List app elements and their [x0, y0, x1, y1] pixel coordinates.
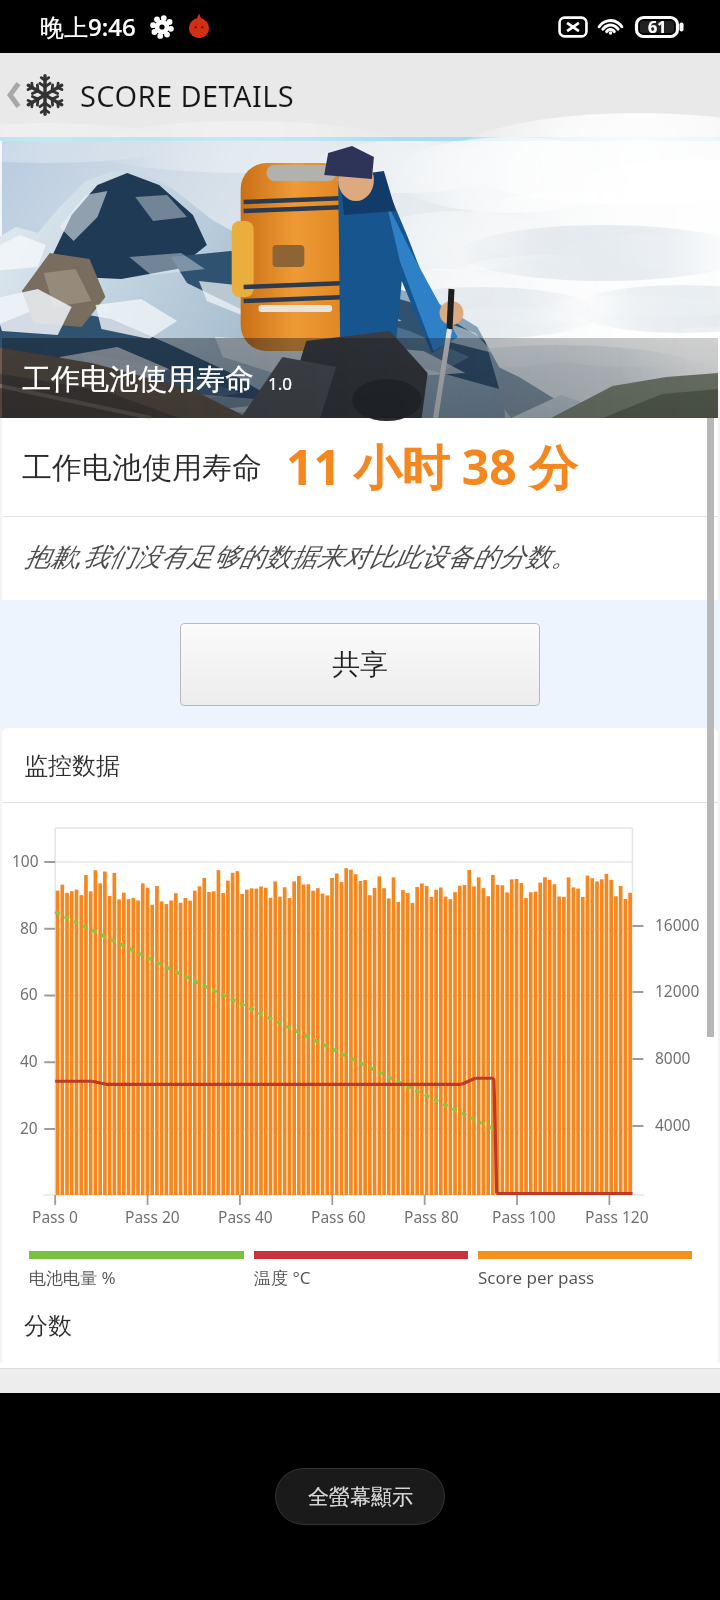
staticText: 8000	[655, 1047, 691, 1068]
staticText: Pass 80	[404, 1206, 459, 1227]
staticText: 16000	[655, 914, 700, 935]
staticText: 1.0	[268, 372, 293, 395]
staticText: 工作电池使用寿命	[22, 449, 262, 487]
staticText: Pass 40	[218, 1206, 273, 1227]
staticText: 12000	[655, 980, 700, 1001]
staticText: Pass 60	[311, 1206, 366, 1227]
staticText: SCORE DETAILS	[80, 76, 295, 115]
staticText: 抱歉,我们没有足够的数据来对比此设备的分数。	[24, 538, 577, 574]
button[interactable]: 共享	[180, 623, 540, 706]
staticText: 晚上9:46	[40, 10, 136, 43]
staticText: 60	[20, 983, 38, 1004]
staticText: Score per pass	[478, 1266, 595, 1288]
staticText: 40	[20, 1050, 38, 1071]
staticText: 监控数据	[24, 751, 120, 781]
button[interactable]: Back	[7, 53, 66, 137]
staticText: 电池电量 %	[29, 1266, 116, 1288]
staticText: 61	[648, 16, 667, 38]
staticText: Pass 120	[585, 1206, 649, 1227]
staticText: Pass 20	[125, 1206, 180, 1227]
staticText: Pass 0	[32, 1206, 78, 1227]
staticText: Pass 100	[492, 1206, 556, 1227]
staticText: 80	[20, 917, 38, 938]
staticText: 共享	[332, 647, 388, 682]
staticText: 100	[12, 850, 39, 871]
staticText: 20	[20, 1117, 38, 1138]
staticText: 工作电池使用寿命	[22, 361, 254, 398]
staticText: 温度 °C	[254, 1266, 311, 1288]
staticText: 全螢幕顯示	[308, 1484, 413, 1510]
button[interactable]: 全螢幕顯示	[275, 1468, 445, 1525]
staticText: 4000	[655, 1114, 691, 1135]
staticText: 分数	[24, 1311, 72, 1341]
staticText: 11 小时 38 分	[286, 434, 578, 500]
